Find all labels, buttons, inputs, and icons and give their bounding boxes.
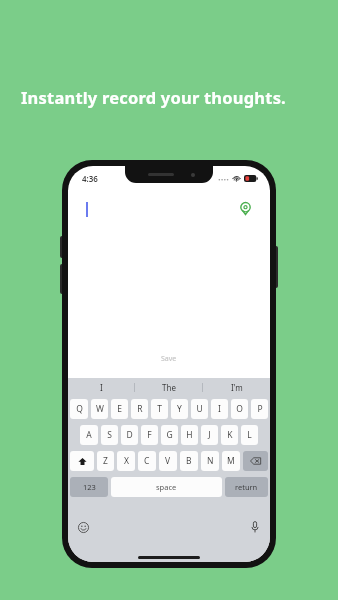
button[interactable]: D (121, 425, 138, 445)
button[interactable]: Add location (237, 200, 253, 216)
staticText: I (100, 382, 103, 393)
staticText: E (117, 403, 122, 415)
button[interactable]: I'm (203, 378, 270, 396)
staticText: V (165, 455, 171, 467)
staticText: M (227, 455, 235, 467)
button[interactable]: L (241, 425, 258, 445)
button[interactable]: G (161, 425, 178, 445)
staticText: The (162, 382, 176, 393)
button[interactable]: H (181, 425, 198, 445)
staticText: T (157, 403, 162, 415)
staticText: Instantly record your thoughts. (21, 86, 286, 108)
staticText: J (208, 429, 211, 441)
staticText: G (166, 429, 173, 441)
staticText: return (235, 482, 258, 492)
staticText: L (247, 429, 252, 441)
button[interactable]: S (101, 425, 118, 445)
button[interactable]: Dictate (247, 519, 263, 535)
button[interactable]: W (91, 399, 108, 419)
button[interactable]: Z (97, 451, 114, 471)
staticText: Save (161, 354, 177, 364)
button[interactable]: P (251, 399, 268, 419)
button[interactable]: F (141, 425, 158, 445)
staticText: space (156, 482, 177, 492)
button[interactable]: X (117, 451, 135, 471)
button[interactable]: Emoji (75, 519, 91, 535)
button[interactable]: N (201, 451, 219, 471)
staticText: F (147, 429, 152, 441)
staticText: B (186, 455, 192, 467)
button[interactable]: B (180, 451, 198, 471)
staticText: K (227, 429, 233, 441)
button[interactable]: V (159, 451, 177, 471)
button[interactable]: Add location (76, 192, 262, 376)
staticText: R (137, 403, 143, 415)
button[interactable]: O (231, 399, 248, 419)
staticText: Z (103, 455, 108, 467)
staticText: U (196, 403, 203, 415)
staticText: 123 (83, 482, 96, 492)
staticText: 4:36 (82, 173, 98, 184)
button[interactable]: return (225, 477, 268, 497)
button[interactable]: U (191, 399, 208, 419)
button[interactable]: I (211, 399, 228, 419)
button[interactable]: Save (151, 352, 187, 366)
staticText: N (207, 455, 214, 467)
button[interactable]: Q (70, 399, 88, 419)
staticText: Q (76, 403, 83, 415)
button[interactable]: T (151, 399, 168, 419)
button[interactable]: J (201, 425, 218, 445)
button[interactable]: C (138, 451, 156, 471)
button[interactable]: I (68, 378, 134, 396)
staticText: W (96, 403, 104, 415)
staticText: H (186, 429, 193, 441)
staticText: I'm (231, 382, 243, 393)
button[interactable]: Shift (70, 451, 94, 471)
button[interactable]: Y (171, 399, 188, 419)
button[interactable]: A (80, 425, 98, 445)
staticText: S (107, 429, 112, 441)
button[interactable]: The (135, 378, 202, 396)
button[interactable]: 123 (70, 477, 108, 497)
button[interactable]: M (222, 451, 240, 471)
staticText: I (218, 403, 221, 415)
staticText: P (257, 403, 263, 415)
staticText: X (124, 455, 129, 467)
button[interactable]: Delete (243, 451, 268, 471)
button[interactable]: R (131, 399, 148, 419)
staticText: Y (177, 403, 182, 415)
button[interactable]: E (111, 399, 128, 419)
button[interactable]: space (111, 477, 222, 497)
staticText: C (144, 455, 150, 467)
staticText: D (126, 429, 133, 441)
button[interactable]: K (221, 425, 238, 445)
staticText: O (236, 403, 243, 415)
staticText: A (86, 429, 92, 441)
